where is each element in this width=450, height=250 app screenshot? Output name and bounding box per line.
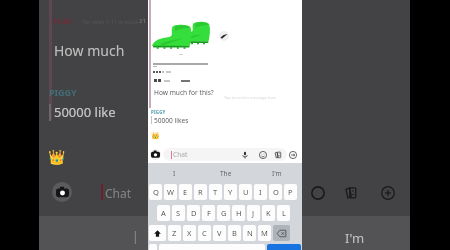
staticText: E: [183, 187, 188, 197]
button[interactable]: I'm: [251, 163, 302, 183]
button[interactable]: Camera: [150, 149, 161, 160]
staticText: N: [247, 228, 253, 238]
staticText: Tap to send a message here: [224, 95, 277, 100]
button[interactable]: O: [269, 184, 282, 200]
staticText: 50000 likes: [154, 116, 189, 125]
button[interactable]: Emoji: [258, 150, 268, 160]
staticText: S: [176, 208, 181, 218]
button[interactable]: Q: [149, 184, 162, 200]
staticText: L: [282, 208, 286, 218]
button[interactable]: B: [228, 225, 241, 241]
staticText: 21: [139, 17, 146, 25]
button[interactable]: Backspace: [273, 225, 290, 241]
button[interactable]: I: [148, 163, 200, 183]
button[interactable]: D: [187, 205, 200, 221]
button[interactable]: S: [172, 205, 185, 221]
button[interactable]: X: [183, 225, 196, 241]
staticText: How much for this?: [154, 88, 214, 97]
button[interactable]: V: [213, 225, 226, 241]
staticText: Chat: [105, 185, 132, 201]
staticText: I'm: [345, 229, 365, 247]
button[interactable]: W: [164, 184, 177, 200]
staticText: U: [243, 187, 249, 197]
staticText: O: [273, 187, 279, 197]
button[interactable]: The: [200, 163, 251, 183]
staticText: C: [202, 228, 207, 238]
button[interactable]: F: [202, 205, 215, 221]
button[interactable]: Chat: [163, 148, 287, 161]
button[interactable]: N: [243, 225, 256, 241]
button[interactable]: K: [262, 205, 275, 221]
button[interactable]: Stickers: [273, 150, 283, 160]
button[interactable]: R: [194, 184, 207, 200]
staticText: W: [167, 187, 174, 197]
staticText: Z: [172, 228, 177, 238]
button[interactable]: M: [258, 225, 271, 241]
staticText: 50000 like: [54, 103, 116, 121]
button[interactable]: Y: [224, 184, 237, 200]
button[interactable]: E: [179, 184, 192, 200]
button[interactable]: U: [239, 184, 252, 200]
staticText: D: [191, 208, 197, 218]
button[interactable]: G: [217, 205, 230, 221]
button[interactable]: H: [232, 205, 245, 221]
button[interactable]: Shift: [149, 225, 166, 241]
button[interactable]: Symbols: [149, 244, 157, 250]
staticText: P: [288, 187, 293, 197]
staticText: The: [220, 169, 232, 178]
staticText: F: [207, 208, 211, 218]
staticText: 19.00: [53, 17, 71, 27]
staticText: Q: [153, 187, 159, 197]
staticText: I: [173, 169, 176, 178]
button[interactable]: I: [254, 184, 267, 200]
staticText: 👑: [48, 149, 66, 165]
staticText: I: [259, 187, 262, 197]
staticText: H: [236, 208, 242, 218]
staticText: Y: [228, 187, 233, 197]
staticText: How much: [54, 41, 125, 60]
staticText: R: [198, 187, 203, 197]
staticText: A: [161, 208, 166, 218]
staticText: for sizes 7-11 in stock: [83, 18, 139, 25]
staticText: |: [132, 228, 139, 244]
button[interactable]: Send: [288, 150, 298, 160]
button[interactable]: J: [247, 205, 260, 221]
staticText: Chat: [173, 150, 188, 159]
staticText: I'm: [272, 169, 282, 178]
staticText: X: [187, 228, 192, 238]
staticText: PIGGY: [49, 86, 77, 98]
staticText: K: [266, 208, 271, 218]
staticText: B: [232, 228, 237, 238]
staticText: PIGGY: [151, 109, 166, 115]
staticText: 👑: [151, 132, 160, 140]
button[interactable]: T: [209, 184, 222, 200]
button[interactable]: Enter: [267, 244, 301, 250]
button[interactable]: C: [198, 225, 211, 241]
staticText: V: [217, 228, 222, 238]
staticText: M: [261, 228, 268, 238]
button[interactable]: Voice message: [240, 150, 250, 160]
staticText: G: [221, 208, 227, 218]
button[interactable]: A: [157, 205, 170, 221]
button[interactable]: Z: [168, 225, 181, 241]
button[interactable]: L: [277, 205, 290, 221]
staticText: J: [252, 208, 255, 218]
staticText: T: [213, 187, 218, 197]
button[interactable]: P: [284, 184, 297, 200]
